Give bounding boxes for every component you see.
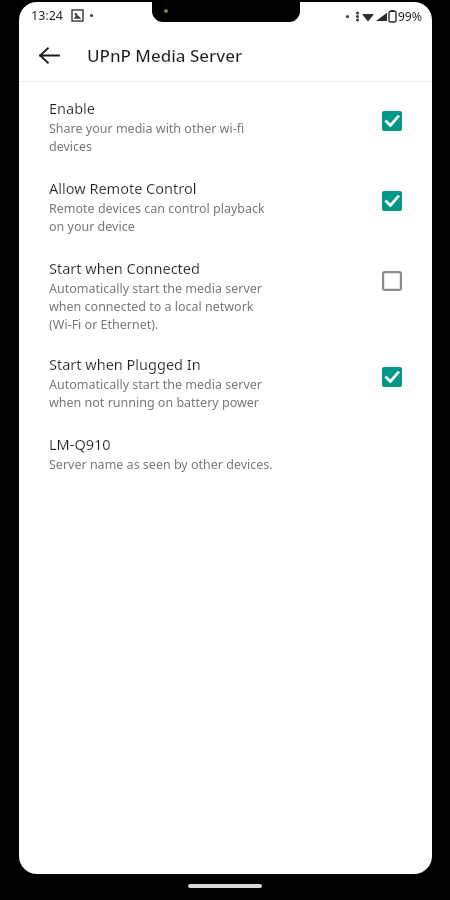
button[interactable]: Start when Connected: [368, 258, 416, 304]
staticText: 13:24: [31, 7, 64, 24]
button[interactable]: Start when Connected: [19, 240, 432, 338]
staticText: LM-Q910: [49, 434, 111, 454]
staticText: Start when Connected: [49, 258, 200, 278]
staticText: Enable: [49, 98, 95, 118]
staticText: Start when Plugged In: [49, 354, 201, 374]
button[interactable]: Allow Remote Control: [368, 178, 416, 224]
staticText: Remote devices can control playback on y…: [49, 200, 265, 234]
staticText: 99%: [398, 8, 422, 24]
button[interactable]: Enable: [19, 94, 432, 160]
staticText: Automatically start the media server whe…: [49, 376, 262, 410]
button[interactable]: Start when Plugged In: [368, 354, 416, 400]
staticText: Automatically start the media server whe…: [49, 280, 262, 332]
staticText: Share your media with other wi-fi device…: [49, 120, 245, 154]
button[interactable]: Allow Remote Control: [19, 160, 432, 240]
button[interactable]: LM-Q910: [19, 416, 432, 479]
button[interactable]: Enable: [368, 98, 416, 144]
staticText: UPnP Media Server: [87, 44, 243, 67]
button[interactable]: Start when Plugged In: [19, 338, 432, 416]
staticText: Allow Remote Control: [49, 178, 197, 198]
button[interactable]: Back: [27, 33, 71, 77]
staticText: Server name as seen by other devices.: [49, 456, 273, 473]
